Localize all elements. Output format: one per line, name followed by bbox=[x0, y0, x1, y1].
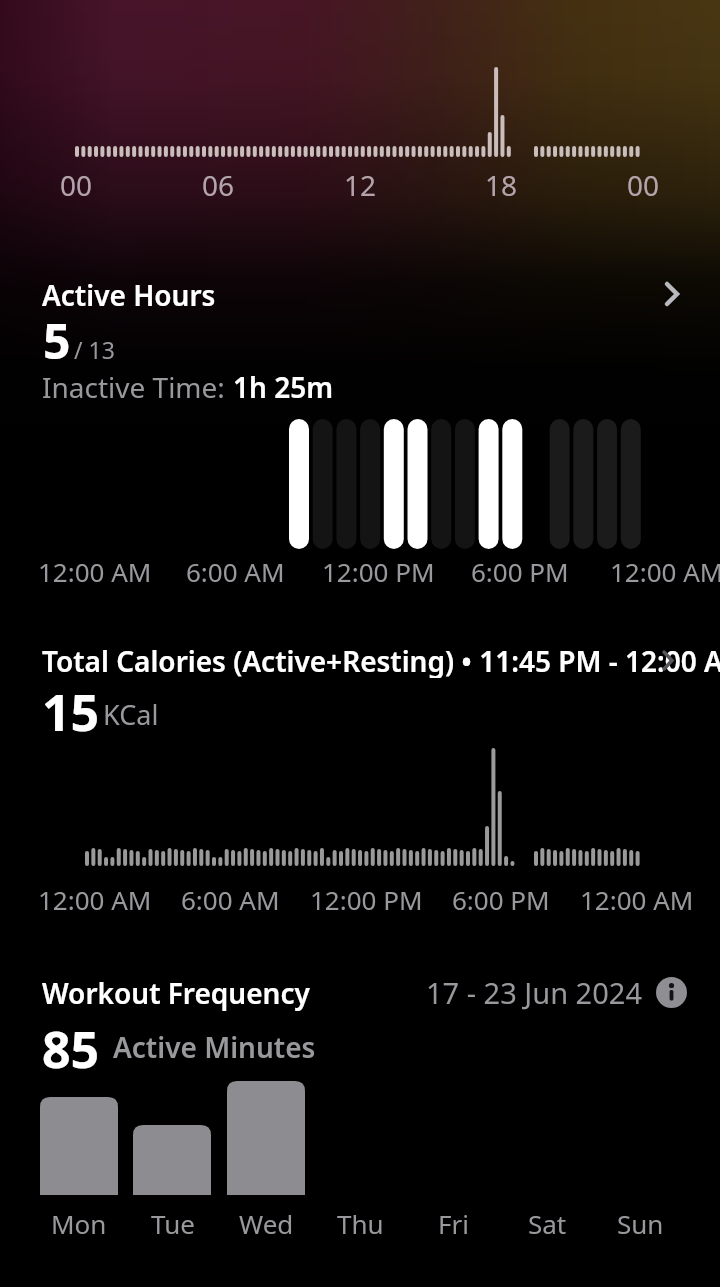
staticText: 00 bbox=[60, 166, 93, 204]
staticText: 6:00 PM bbox=[471, 554, 569, 589]
staticText: Workout Frequency bbox=[42, 974, 310, 1012]
staticText: Wed bbox=[239, 1206, 294, 1241]
staticText: Fri bbox=[438, 1206, 469, 1241]
staticText: 6:00 PM bbox=[452, 882, 550, 917]
staticText: 12:00 PM bbox=[322, 554, 435, 589]
staticText: Thu bbox=[337, 1206, 384, 1241]
button[interactable]: Active Hours bbox=[0, 276, 720, 312]
staticText: / 13 bbox=[74, 334, 115, 365]
staticText: 18 bbox=[485, 166, 518, 204]
staticText: 12:00 AM bbox=[38, 554, 152, 589]
staticText: 1h 25m bbox=[233, 368, 334, 406]
button[interactable] bbox=[656, 977, 687, 1008]
staticText: Sat bbox=[528, 1206, 567, 1241]
staticText: 12:00 PM bbox=[310, 882, 423, 917]
staticText: 6:00 AM bbox=[186, 554, 285, 589]
staticText: Active Minutes bbox=[113, 1028, 316, 1066]
staticText: Inactive Time: bbox=[42, 368, 233, 406]
staticText: 5 bbox=[43, 308, 71, 373]
staticText: 12:00 AM bbox=[580, 882, 694, 917]
staticText: 17 - 23 Jun 2024 bbox=[426, 973, 642, 1012]
staticText: Sun bbox=[617, 1206, 664, 1241]
staticText: 12:00 AM bbox=[610, 554, 720, 589]
staticText: 6:00 AM bbox=[181, 882, 280, 917]
staticText: Tue bbox=[151, 1206, 195, 1241]
staticText: 12 bbox=[344, 166, 377, 204]
button[interactable]: Total Calories (Active+Resting) • 11:45 … bbox=[0, 642, 720, 678]
staticText: 00 bbox=[627, 166, 660, 204]
staticText: Mon bbox=[51, 1206, 107, 1241]
staticText: Total Calories (Active+Resting) • 11:45 … bbox=[42, 642, 720, 678]
staticText: 15 bbox=[42, 678, 100, 746]
staticText: 06 bbox=[202, 166, 235, 204]
staticText: KCal bbox=[103, 696, 159, 733]
staticText: 85 bbox=[42, 1015, 100, 1083]
staticText: Active Hours bbox=[42, 276, 216, 312]
staticText: 12:00 AM bbox=[38, 882, 152, 917]
